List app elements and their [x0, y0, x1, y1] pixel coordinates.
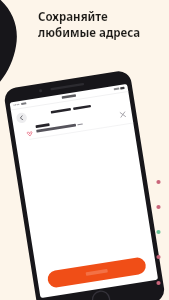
- button[interactable]: Работа, Комсомольская улица: [28, 128, 110, 146]
- staticText: Сохраняйте любимые адреса: [38, 9, 141, 41]
- button[interactable]: Назад: [22, 118, 38, 134]
- button[interactable]: Добавить: [50, 246, 138, 268]
- button[interactable]: Домой: [84, 278, 104, 298]
